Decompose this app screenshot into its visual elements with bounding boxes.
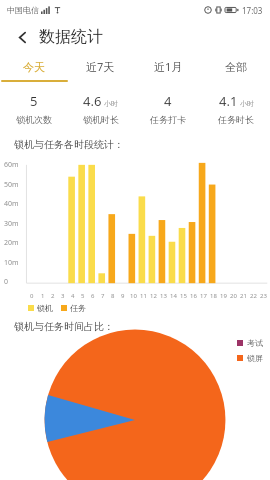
staticText: 20 (230, 292, 237, 300)
button[interactable]: 近1月 (134, 54, 202, 79)
staticText: 30m (4, 219, 19, 229)
staticText: 任务 (70, 303, 86, 313)
staticText: 数据统计 (39, 27, 103, 47)
staticText: 7 (101, 292, 105, 300)
staticText: 近7天 (86, 59, 115, 74)
staticText: 16 (190, 292, 197, 300)
staticText: 5 (81, 292, 85, 300)
staticText: 任务时长 (218, 114, 254, 125)
staticText: 任务打卡 (150, 114, 186, 125)
staticText: 12 (150, 292, 157, 300)
staticText: 23 (260, 292, 267, 300)
button[interactable]: 今天 (0, 54, 67, 79)
staticText: 14 (170, 292, 177, 300)
staticText: 0 (4, 277, 9, 287)
staticText: 5 (30, 92, 38, 110)
staticText: 13 (160, 292, 167, 300)
staticText: 21 (240, 292, 247, 300)
staticText: 2 (51, 292, 55, 300)
staticText: 4 (71, 292, 75, 300)
staticText: 17 (200, 292, 207, 300)
staticText: 10 (130, 292, 137, 300)
staticText: 近1月 (154, 59, 183, 74)
staticText: 20m (4, 238, 19, 248)
staticText: 4.6 (83, 92, 102, 110)
staticText: 考试 (247, 338, 263, 348)
staticText: 10m (4, 258, 19, 268)
staticText: 锁屏 (247, 353, 263, 363)
staticText: 小时 (240, 99, 254, 108)
button[interactable]: 近7天 (67, 54, 134, 79)
staticText: 4 (164, 92, 172, 110)
staticText: 锁机次数 (16, 114, 52, 125)
staticText: 全部 (225, 60, 247, 74)
staticText: 17:03 (242, 5, 263, 16)
button[interactable]: 全部 (202, 54, 270, 79)
staticText: 3 (61, 292, 65, 300)
staticText: 60m (4, 160, 19, 170)
staticText: 15 (180, 292, 187, 300)
staticText: 8 (111, 292, 115, 300)
staticText: 18 (210, 292, 217, 300)
staticText: 中国电信 (7, 5, 39, 15)
staticText: 锁机 (37, 303, 53, 313)
staticText: 6 (91, 292, 95, 300)
staticText: 11 (140, 292, 147, 300)
staticText: 小时 (104, 99, 118, 108)
staticText: 1 (41, 292, 45, 300)
staticText: 9 (121, 292, 125, 300)
staticText: 19 (220, 292, 227, 300)
staticText: 今天 (23, 60, 45, 74)
staticText: 锁机与任务时间占比： (14, 320, 114, 333)
staticText: 4.1 (219, 92, 238, 110)
staticText: 40m (4, 199, 19, 209)
button[interactable]: 返回 (9, 24, 35, 50)
staticText: 锁机与任务各时段统计： (14, 138, 124, 151)
staticText: 22 (250, 292, 257, 300)
staticText: 50m (4, 180, 19, 190)
staticText: 锁机时长 (83, 114, 119, 125)
staticText: 0 (30, 292, 34, 300)
